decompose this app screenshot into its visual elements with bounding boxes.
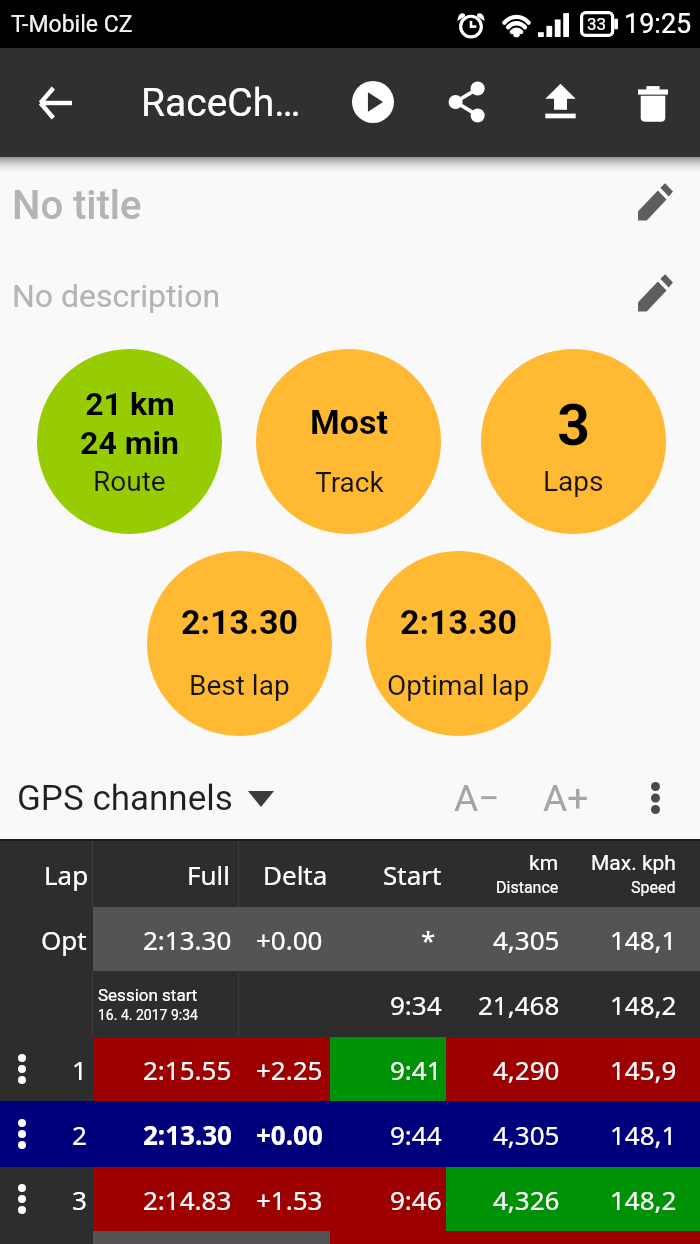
staticText: Optimal lap bbox=[387, 669, 530, 702]
staticText: Most bbox=[310, 402, 388, 442]
button[interactable]: Decrease text size bbox=[442, 763, 512, 833]
staticText: No title bbox=[12, 182, 142, 229]
staticText: 21 km bbox=[85, 385, 175, 423]
staticText: Full bbox=[187, 857, 230, 892]
staticText: Route bbox=[93, 465, 166, 498]
staticText: +1.53 bbox=[256, 1182, 323, 1217]
staticText: 2:14.83 bbox=[143, 1182, 232, 1217]
staticText: 16. 4. 2017 9:34 bbox=[98, 1007, 198, 1023]
button[interactable]: GPS channels bbox=[0, 766, 286, 831]
button[interactable]: Delete bbox=[621, 71, 685, 135]
button[interactable]: More options bbox=[625, 768, 685, 828]
staticText: 2:15.55 bbox=[143, 1052, 232, 1087]
button[interactable]: Back bbox=[23, 71, 87, 135]
staticText: +0.00 bbox=[256, 1117, 323, 1152]
button[interactable]: 2:13.30 bbox=[366, 551, 551, 736]
staticText: 9:34 bbox=[390, 987, 442, 1022]
staticText: A+ bbox=[543, 777, 589, 820]
button[interactable]: 3 bbox=[0, 1167, 700, 1231]
button[interactable]: Most bbox=[256, 349, 441, 534]
staticText: Max. kph bbox=[591, 851, 676, 876]
button[interactable]: 1 bbox=[0, 1037, 700, 1101]
staticText: RaceCh… bbox=[141, 80, 301, 126]
staticText: 148,1 bbox=[610, 1117, 677, 1152]
button[interactable]: Edit bbox=[625, 264, 685, 324]
staticText: 2:13.30 bbox=[143, 1117, 232, 1152]
staticText: 3 bbox=[72, 1182, 87, 1217]
button[interactable]: Share bbox=[435, 70, 499, 134]
staticText: 9:44 bbox=[390, 1117, 442, 1152]
staticText: 24 min bbox=[80, 424, 179, 462]
staticText: Best lap bbox=[189, 669, 290, 702]
staticText: 33 bbox=[587, 14, 607, 34]
staticText: +2.25 bbox=[256, 1052, 323, 1087]
button[interactable]: Increase text size bbox=[531, 763, 601, 833]
button[interactable]: 2 bbox=[0, 1101, 700, 1167]
button[interactable]: No description bbox=[0, 258, 700, 334]
staticText: Speed bbox=[631, 878, 676, 897]
button[interactable]: 3 bbox=[481, 349, 666, 534]
staticText: 148,2 bbox=[610, 987, 677, 1022]
staticText: 9:41 bbox=[390, 1052, 442, 1087]
staticText: 4,305 bbox=[493, 922, 560, 957]
staticText: 2:13.30 bbox=[400, 602, 517, 642]
button[interactable]: No title bbox=[0, 167, 700, 243]
staticText: Lap bbox=[44, 857, 89, 892]
staticText: 2:13.30 bbox=[181, 602, 298, 642]
staticText: 4,305 bbox=[493, 1117, 560, 1152]
staticText: GPS channels bbox=[17, 778, 233, 819]
staticText: 148,1 bbox=[610, 922, 677, 957]
staticText: 148,2 bbox=[610, 1182, 677, 1217]
button[interactable]: 2:13.30 bbox=[147, 551, 332, 736]
staticText: Opt bbox=[41, 922, 87, 957]
button[interactable]: Upload bbox=[528, 69, 592, 133]
staticText: T-Mobile CZ bbox=[11, 11, 133, 38]
staticText: 1 bbox=[72, 1052, 87, 1087]
button[interactable]: Edit bbox=[625, 173, 685, 233]
staticText: Laps bbox=[543, 465, 604, 498]
staticText: 3 bbox=[557, 392, 590, 459]
staticText: Delta bbox=[263, 857, 328, 892]
staticText: 21,468 bbox=[478, 987, 560, 1022]
staticText: Session start bbox=[98, 985, 198, 1005]
staticText: km bbox=[529, 851, 559, 876]
staticText: 9:46 bbox=[390, 1182, 442, 1217]
staticText: * bbox=[421, 922, 436, 957]
staticText: 145,9 bbox=[610, 1052, 677, 1087]
staticText: 2:13.30 bbox=[143, 922, 232, 957]
staticText: 2 bbox=[72, 1117, 87, 1152]
staticText: Distance bbox=[496, 878, 559, 897]
staticText: 19:25 bbox=[624, 8, 692, 40]
staticText: Track bbox=[315, 466, 384, 499]
staticText: 4,290 bbox=[493, 1052, 560, 1087]
staticText: No description bbox=[12, 277, 221, 315]
staticText: +0.00 bbox=[256, 922, 323, 957]
button[interactable]: Play bbox=[341, 70, 405, 134]
staticText: A− bbox=[454, 777, 500, 820]
button[interactable]: 21 km bbox=[37, 349, 222, 534]
staticText: Start bbox=[383, 857, 442, 892]
staticText: 4,326 bbox=[493, 1182, 560, 1217]
